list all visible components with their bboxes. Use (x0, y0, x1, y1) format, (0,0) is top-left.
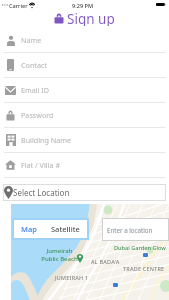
button[interactable]: Building Name (0, 128, 169, 153)
staticText: Select Location (13, 187, 70, 198)
staticText: Dubai Garden Glow (114, 244, 166, 252)
staticText: Jumeirah Public Beach (41, 247, 78, 263)
button[interactable]: Contact (0, 53, 169, 78)
button[interactable]: Flat / Villa # (0, 153, 169, 178)
staticText: Contact (21, 60, 48, 70)
staticText: Map (21, 224, 37, 234)
button[interactable]: Enter a location (102, 218, 169, 241)
button[interactable]: Select Location (3, 184, 166, 201)
staticText: Enter a location (107, 226, 153, 234)
button[interactable]: Email ID (0, 78, 169, 103)
staticText: JUMEIRAH 1 (55, 274, 89, 281)
button[interactable]: Map (21, 224, 37, 234)
staticText: Email ID (21, 85, 50, 95)
staticText: Carrier (9, 2, 28, 10)
staticText: Building Name (21, 135, 72, 145)
staticText: Satellite (51, 224, 80, 234)
button[interactable]: Satellite (51, 224, 80, 234)
staticText: AL BADA'A (91, 258, 120, 265)
button[interactable]: Name (0, 28, 169, 53)
staticText: TRADE CENTRE (123, 265, 165, 272)
button[interactable]: Password (0, 103, 169, 128)
staticText: Flat / Villa # (21, 160, 61, 170)
staticText: Sign up (67, 10, 115, 26)
staticText: Name (21, 35, 42, 45)
staticText: 9:29 PM (72, 2, 94, 10)
staticText: Password (21, 110, 54, 120)
